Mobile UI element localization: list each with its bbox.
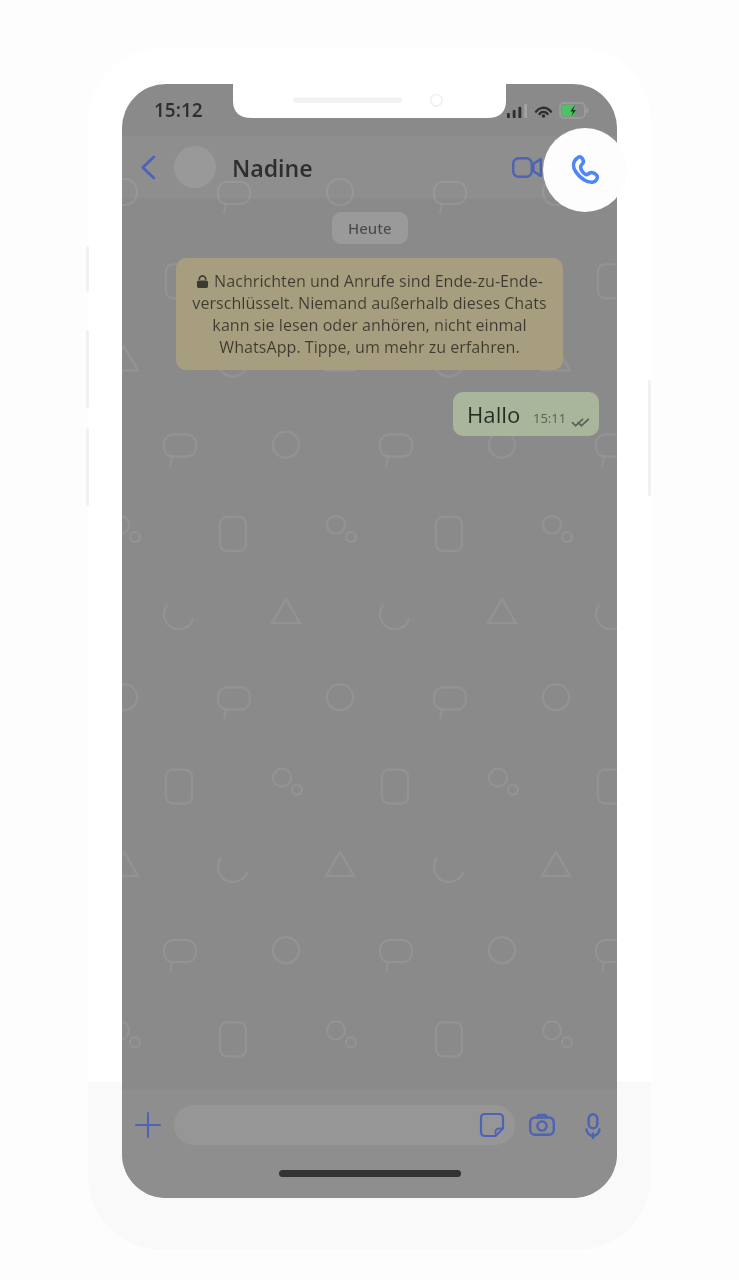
button[interactable]: Nadine: [174, 136, 499, 198]
button[interactable]: Sprachanruf: [543, 128, 627, 212]
button[interactable]: Zurück: [122, 136, 174, 198]
staticText: WhatsApp. Tippe, um mehr zu erfahren.: [219, 336, 520, 358]
staticText: kann sie lesen oder anhören, nicht einma…: [212, 314, 527, 336]
button[interactable]: Nachrichten und Anrufe sind Ende-zu-Ende…: [176, 258, 563, 370]
button[interactable]: Kamera: [515, 1090, 569, 1160]
staticText: Hallo: [467, 399, 521, 429]
button[interactable]: Videoanruf: [499, 136, 555, 198]
staticText: Heute: [348, 218, 392, 238]
staticText: Nachrichten und Anrufe sind Ende-zu-Ende…: [214, 270, 543, 292]
button[interactable]: Sprachanruf: [555, 136, 617, 198]
staticText: 15:11: [533, 409, 567, 427]
staticText: Nadine: [232, 152, 313, 183]
staticText: verschlüsselt. Niemand außerhalb dieses …: [192, 292, 547, 314]
button[interactable]: Hallo: [453, 392, 599, 436]
button[interactable]: Heute: [332, 212, 408, 244]
staticText: 15:12: [154, 97, 203, 123]
button[interactable]: Anhängen: [122, 1090, 174, 1160]
button[interactable]: [174, 1105, 515, 1145]
button[interactable]: Sprachnachricht: [569, 1090, 617, 1160]
